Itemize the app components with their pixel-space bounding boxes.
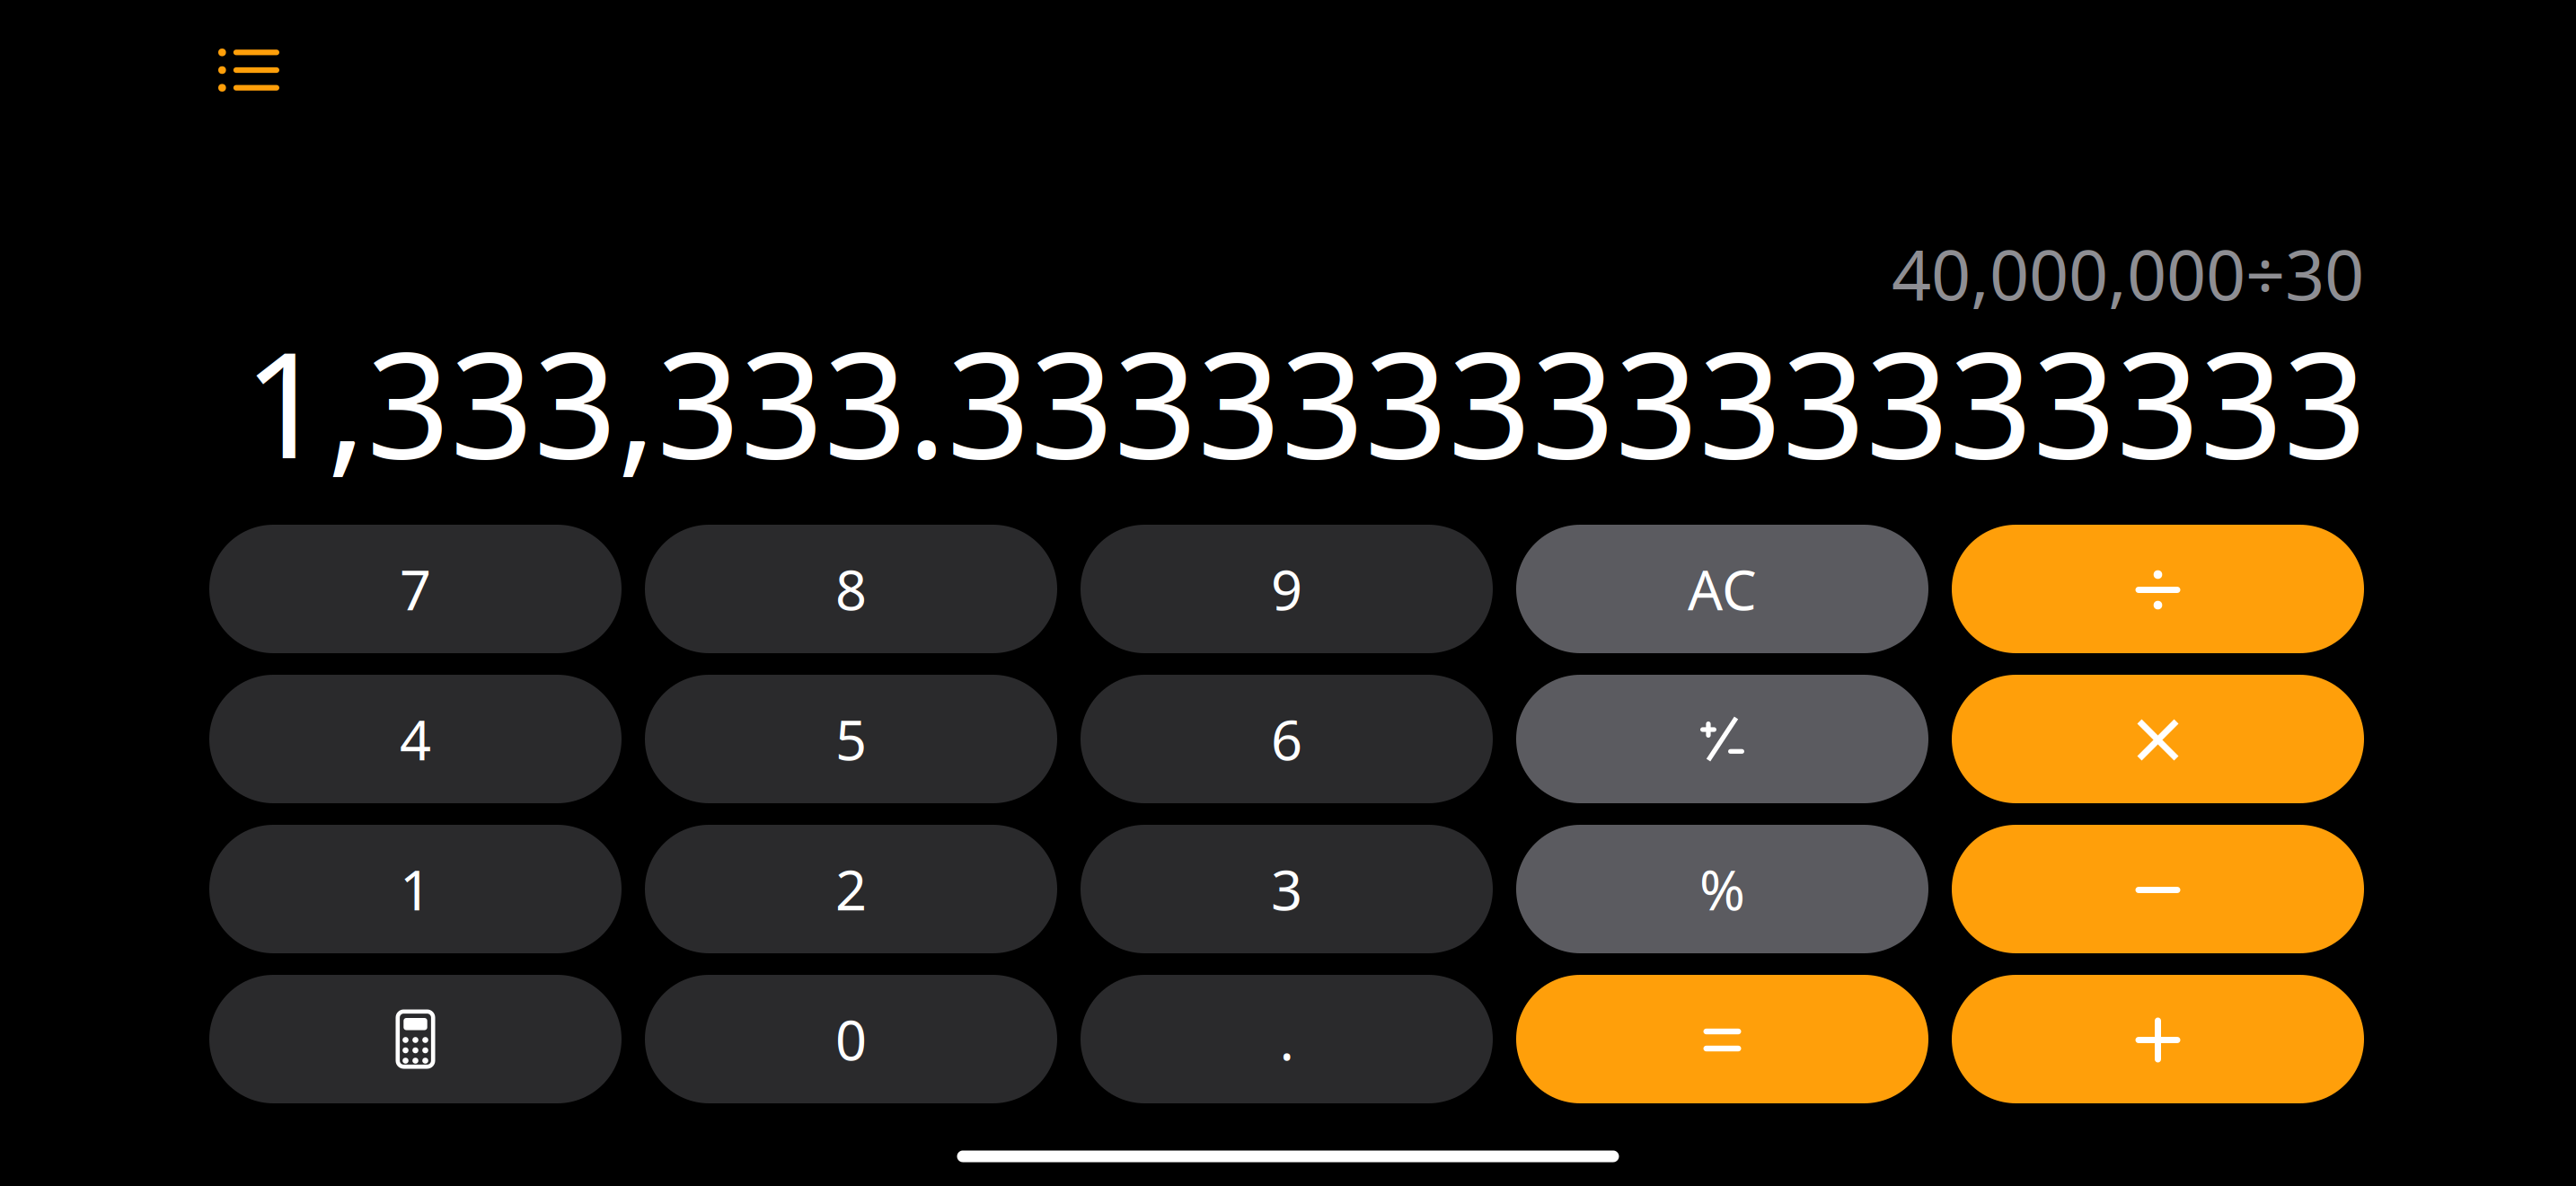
button[interactable]: % [1516,825,1928,953]
staticText: . [1279,1003,1294,1076]
staticText: 0 [835,1003,867,1076]
button[interactable]: 0 [645,975,1057,1103]
staticText: 8 [835,552,867,626]
staticText: % [1699,852,1745,926]
button[interactable]: . [1081,975,1493,1103]
button[interactable]: History [181,12,316,128]
staticText: 1,333,333.33333333333333333 [243,305,2367,499]
button[interactable]: Calculator mode [209,975,622,1103]
button[interactable]: Add [1952,975,2364,1103]
staticText: 3 [1271,852,1302,926]
button[interactable]: 5 [645,675,1057,803]
button[interactable]: Equals [1516,975,1928,1103]
button[interactable]: Subtract [1952,825,2364,953]
button[interactable]: Divide [1952,525,2364,653]
staticText: 7 [400,552,431,626]
staticText: 40,000,000÷30 [1892,227,2364,319]
button[interactable]: Multiply [1952,675,2364,803]
staticText: 5 [835,702,867,776]
button[interactable]: Plus minus [1516,675,1928,803]
button[interactable]: 2 [645,825,1057,953]
button[interactable]: 4 [209,675,622,803]
staticText: 2 [835,852,867,926]
staticText: 6 [1271,702,1302,776]
staticText: 4 [400,702,431,776]
staticText: 1 [400,852,431,926]
button[interactable]: 7 [209,525,622,653]
button[interactable]: 1 [209,825,622,953]
button[interactable]: 6 [1081,675,1493,803]
button[interactable]: AC [1516,525,1928,653]
button[interactable]: 3 [1081,825,1493,953]
staticText: 9 [1271,552,1302,626]
button[interactable]: 9 [1081,525,1493,653]
button[interactable]: 8 [645,525,1057,653]
staticText: AC [1688,552,1757,626]
